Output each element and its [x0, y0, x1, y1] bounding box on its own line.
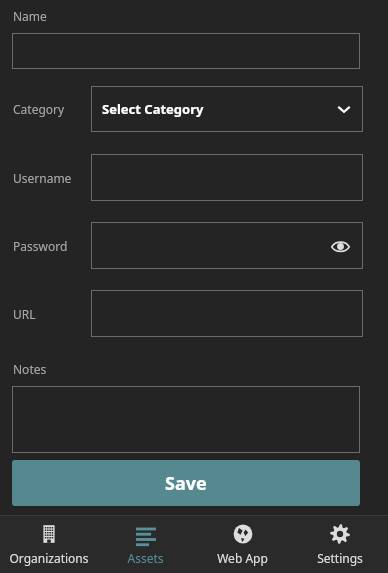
- staticText: Category: [13, 101, 91, 117]
- staticText: URL: [13, 306, 91, 322]
- staticText: Assets: [127, 550, 164, 566]
- button[interactable]: [91, 154, 363, 201]
- button[interactable]: Select Category: [91, 86, 363, 132]
- button[interactable]: Web App: [194, 516, 291, 573]
- staticText: Web App: [217, 550, 268, 566]
- button[interactable]: Show password: [91, 222, 363, 269]
- button[interactable]: Assets: [97, 516, 194, 573]
- staticText: Organizations: [9, 550, 89, 566]
- staticText: Notes: [13, 361, 47, 377]
- staticText: Save: [165, 471, 207, 496]
- button[interactable]: Save: [12, 460, 360, 506]
- staticText: Password: [13, 238, 91, 254]
- staticText: Select Category: [102, 100, 336, 118]
- button[interactable]: Organizations: [0, 516, 97, 573]
- staticText: Name: [13, 8, 47, 24]
- button[interactable]: [12, 33, 360, 69]
- button[interactable]: Settings: [291, 516, 388, 573]
- staticText: Settings: [317, 550, 363, 566]
- button[interactable]: [91, 290, 363, 337]
- button[interactable]: Show password: [329, 235, 351, 257]
- button[interactable]: [12, 386, 360, 453]
- staticText: Username: [13, 170, 91, 186]
